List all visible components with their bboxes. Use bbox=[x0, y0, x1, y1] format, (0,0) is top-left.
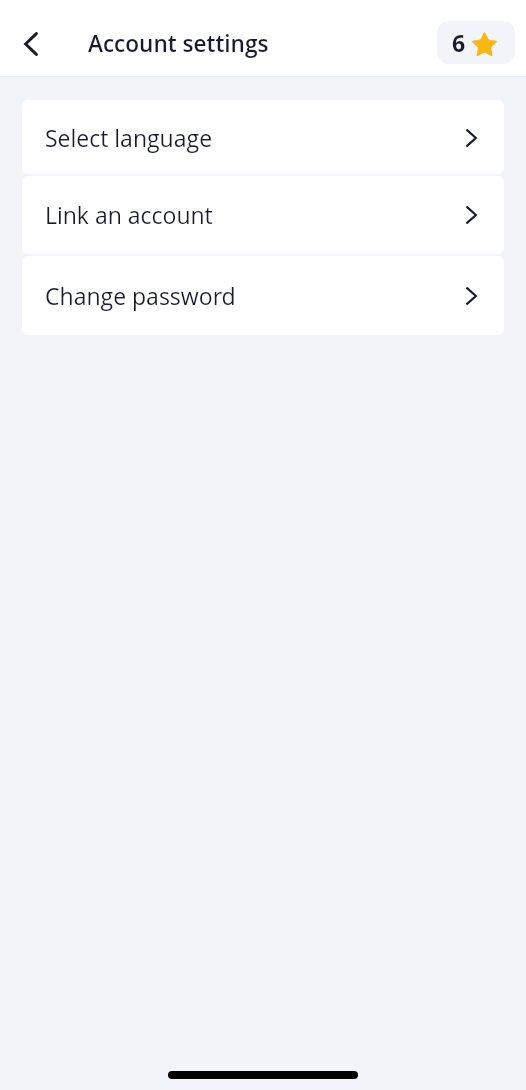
button[interactable]: Change password bbox=[22, 256, 504, 335]
staticText: 6 bbox=[452, 27, 466, 58]
button[interactable]: Back bbox=[4, 17, 56, 69]
button[interactable]: 6 stars bbox=[437, 21, 515, 64]
button[interactable]: Link an account bbox=[22, 176, 504, 254]
staticText: Link an account bbox=[45, 199, 213, 230]
staticText: Change password bbox=[45, 280, 236, 311]
button[interactable]: Select language bbox=[22, 100, 504, 174]
staticText: Account settings bbox=[88, 28, 269, 59]
staticText: Select language bbox=[45, 122, 213, 153]
